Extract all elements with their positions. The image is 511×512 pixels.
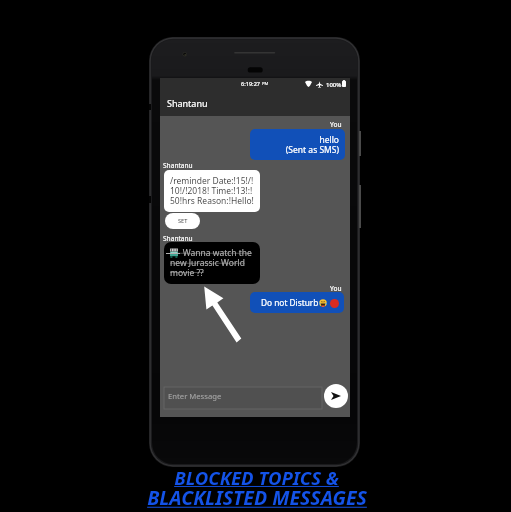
staticText: SET [178, 217, 188, 225]
staticText: /reminder Date:!15!/!10!/!2018! Time:!13… [170, 175, 254, 206]
button[interactable]: SET [165, 213, 200, 229]
button[interactable]: Wanna watch the new Jurassic World movie… [164, 242, 260, 284]
button[interactable]: Send [324, 384, 348, 408]
staticText: You [330, 120, 342, 129]
button[interactable]: Enter Message [164, 387, 322, 409]
staticText: Wanna watch the new Jurassic World movie… [170, 247, 254, 278]
staticText: PM [262, 81, 269, 87]
staticText: 6:19:27 [241, 80, 261, 88]
button[interactable]: hello (Sent as SMS) [250, 129, 345, 160]
staticText: You [330, 284, 342, 293]
staticText: 100% [326, 81, 342, 89]
button[interactable]: Do not Disturb [250, 292, 344, 313]
staticText: Shantanu [167, 97, 208, 109]
button[interactable]: /reminder Date:!15!/!10!/!2018! Time:!13… [164, 170, 260, 212]
staticText: BLACKLISTED MESSAGES [147, 484, 367, 511]
staticText: Shantanu [163, 234, 193, 243]
staticText: hello (Sent as SMS) [285, 134, 339, 155]
staticText: Shantanu [163, 161, 193, 170]
staticText: BLOCKED TOPICS & [174, 465, 339, 490]
button[interactable]: Shantanu [160, 90, 350, 116]
staticText: Do not Disturb [261, 297, 319, 308]
staticText: Enter Message [168, 391, 222, 401]
